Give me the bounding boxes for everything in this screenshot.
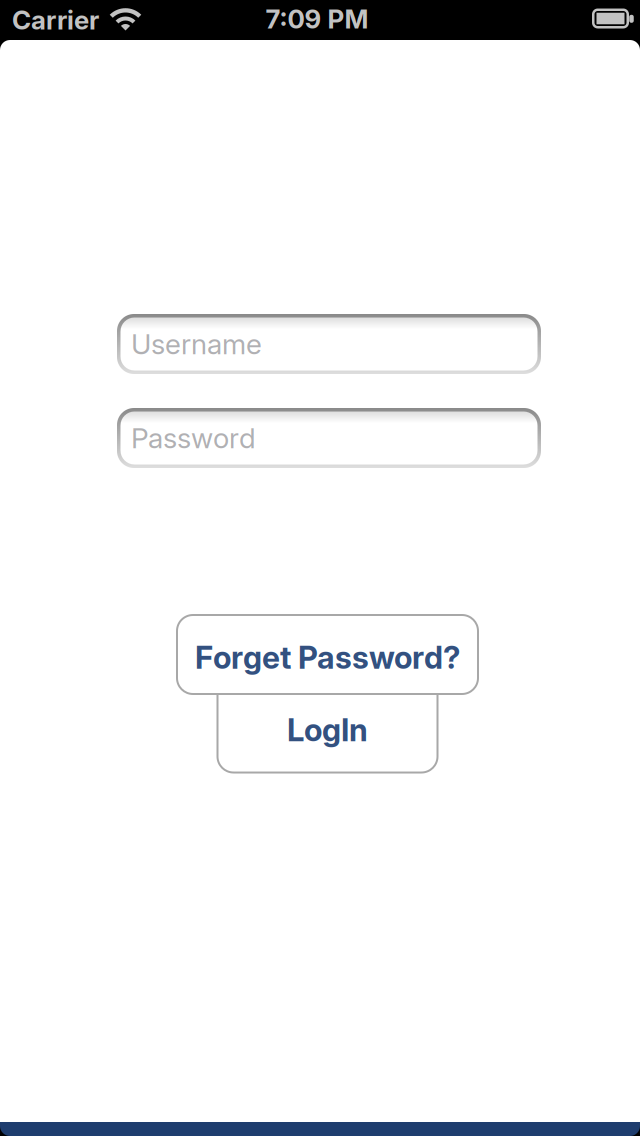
button[interactable]: Password (117, 408, 541, 468)
staticText: Username (131, 327, 262, 361)
button[interactable]: Forget Password? (176, 614, 479, 695)
staticText: Forget Password? (195, 639, 460, 676)
staticText: Carrier (12, 4, 99, 36)
button[interactable]: Username (117, 314, 541, 374)
staticText: LogIn (287, 711, 368, 749)
staticText: Password (131, 421, 256, 455)
button[interactable]: LogIn (216, 677, 438, 773)
staticText: 7:09 PM (265, 3, 368, 35)
